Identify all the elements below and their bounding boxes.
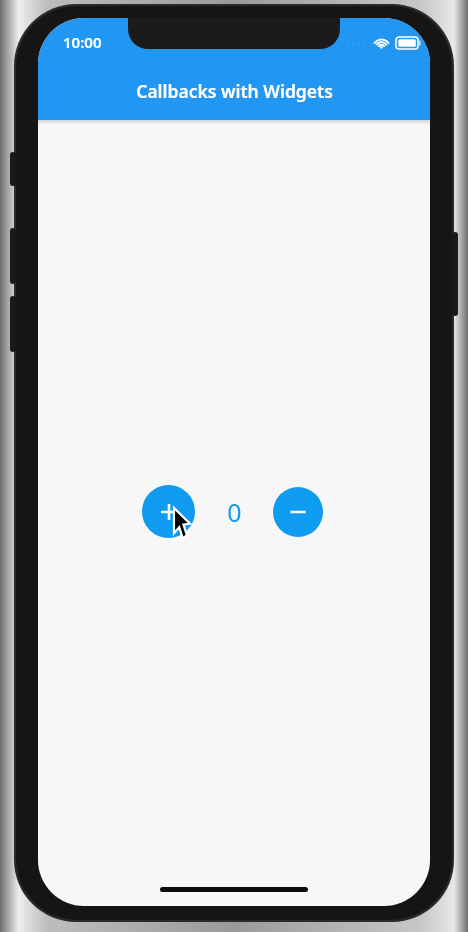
staticText: Callbacks with Widgets bbox=[136, 79, 333, 103]
staticText: 0 bbox=[227, 495, 242, 529]
staticText: 10:00 bbox=[63, 32, 102, 52]
button[interactable]: Increment bbox=[142, 485, 195, 538]
button[interactable]: Decrement bbox=[273, 487, 323, 537]
